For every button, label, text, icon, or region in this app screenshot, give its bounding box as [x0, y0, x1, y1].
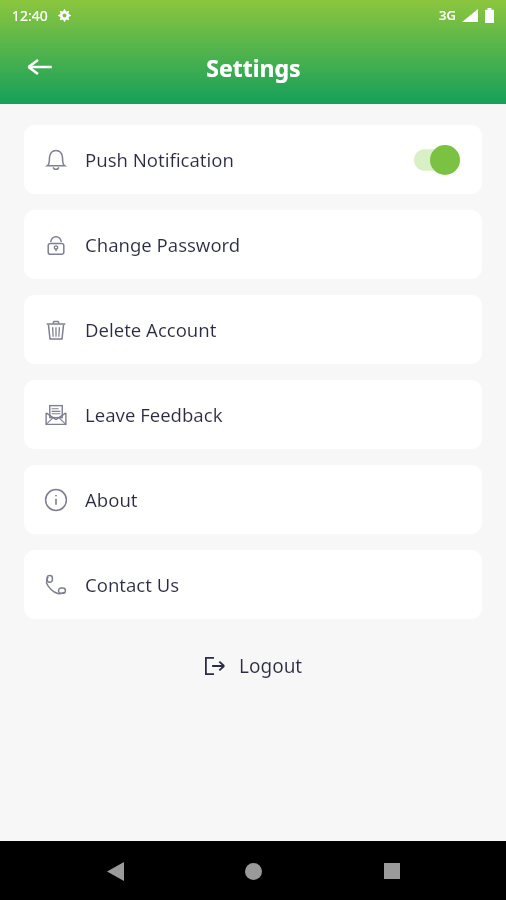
button[interactable]: Delete Account	[24, 295, 482, 364]
staticText: Delete Account	[85, 317, 217, 342]
staticText: 12:40	[12, 6, 48, 25]
button[interactable]: Toggle push notification	[414, 145, 460, 175]
staticText: Logout	[239, 653, 303, 679]
button[interactable]: Back	[18, 45, 62, 89]
button[interactable]: Logout	[189, 645, 317, 687]
button[interactable]: Back	[91, 847, 139, 895]
button[interactable]: Change Password	[24, 210, 482, 279]
button[interactable]: Contact Us	[24, 550, 482, 619]
staticText: Settings	[206, 52, 301, 83]
staticText: Change Password	[85, 232, 241, 257]
staticText: Contact Us	[85, 572, 180, 597]
button[interactable]: About	[24, 465, 482, 534]
button[interactable]: Leave Feedback	[24, 380, 482, 449]
button[interactable]: Push Notification	[24, 125, 482, 194]
button[interactable]: Home	[229, 847, 277, 895]
button[interactable]: Recent apps	[368, 847, 416, 895]
staticText: About	[85, 487, 138, 512]
staticText: Leave Feedback	[85, 402, 223, 427]
staticText: Push Notification	[85, 147, 234, 172]
staticText: 3G	[439, 6, 456, 24]
